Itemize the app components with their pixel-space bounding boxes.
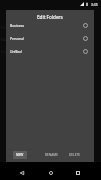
- staticText: 3:35: [91, 2, 98, 7]
- staticText: NEW: [16, 153, 24, 157]
- button[interactable]: NEW: [13, 151, 27, 159]
- staticText: RENAME: [45, 153, 59, 157]
- staticText: Business: [10, 23, 25, 28]
- button[interactable]: Back: [13, 164, 31, 180]
- staticText: Edit Folders: [37, 14, 63, 20]
- staticText: DELETE: [69, 153, 81, 157]
- button[interactable]: Personal: [6, 32, 94, 45]
- button[interactable]: Business: [6, 19, 94, 32]
- button[interactable]: Recents: [69, 164, 87, 180]
- button[interactable]: Unfiled: [6, 45, 94, 58]
- staticText: Engineering: [1, 50, 20, 54]
- staticText: Unfiled: [10, 49, 22, 54]
- staticText: Portfolio: [1, 26, 14, 30]
- button[interactable]: DELETE: [67, 151, 83, 159]
- staticText: Personal: [10, 36, 24, 41]
- button[interactable]: RENAME: [43, 151, 61, 159]
- staticText: Marketing: [1, 38, 17, 42]
- button[interactable]: Home: [42, 164, 60, 180]
